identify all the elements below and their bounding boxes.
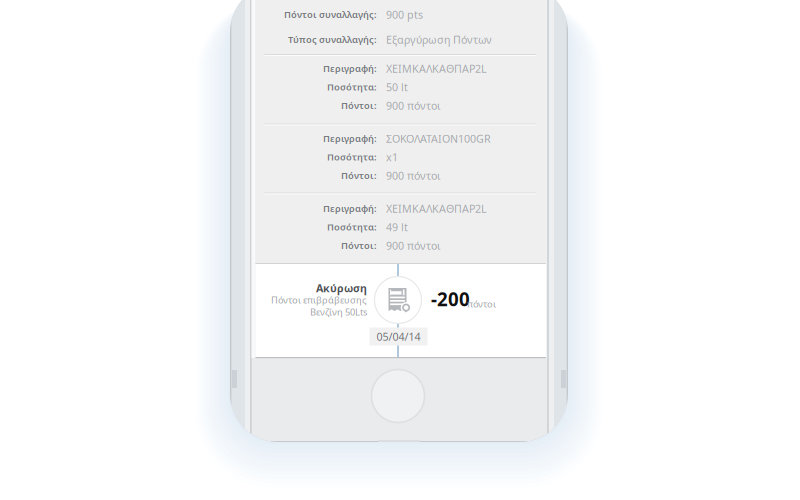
staticText: Πόντοι επιβράβευσης xyxy=(271,294,367,306)
staticText: 49 lt xyxy=(386,220,408,234)
staticText: 50 lt xyxy=(386,80,408,94)
staticText: Ποσότητα: xyxy=(327,151,377,163)
staticText: πόντοι xyxy=(467,298,496,310)
staticText: Τύπος συναλλαγής: xyxy=(288,33,377,46)
staticText: Περιγραφή: xyxy=(323,132,377,145)
staticText: 900 πόντοι xyxy=(386,168,441,183)
staticText: ΧΕΙΜΚΑΛΚΑΘΠΑΡ2L xyxy=(386,201,487,216)
staticText: Ακύρωση xyxy=(316,281,367,295)
staticText: 900 πόντοι xyxy=(386,238,441,253)
staticText: ΧΕΙΜΚΑΛΚΑΘΠΑΡ2L xyxy=(386,61,487,76)
staticText: Περιγραφή: xyxy=(323,62,377,75)
staticText: Πόντοι: xyxy=(341,169,377,182)
staticText: Βενζίνη 50Lts xyxy=(310,306,367,318)
staticText: 05/04/14 xyxy=(376,329,420,344)
staticText: -200 xyxy=(431,287,470,311)
staticText: 900 pts xyxy=(386,7,423,22)
staticText: Πόντοι συναλλαγής: xyxy=(284,8,377,21)
staticText: Πόντοι: xyxy=(341,239,377,252)
staticText: Ποσότητα: xyxy=(327,81,377,93)
button[interactable]: 05/04/14 xyxy=(369,327,427,345)
staticText: ΣΟΚΟΛΑΤΑΙΟΝ100GR xyxy=(386,131,491,146)
staticText: Εξαργύρωση Πόντων xyxy=(386,32,492,47)
button[interactable]: Ακύρωση xyxy=(255,264,546,357)
button[interactable]: Home xyxy=(371,369,424,422)
staticText: Πόντοι: xyxy=(341,99,377,112)
staticText: Ποσότητα: xyxy=(327,221,377,233)
staticText: x1 xyxy=(386,150,398,164)
staticText: Περιγραφή: xyxy=(323,202,377,215)
staticText: 900 πόντοι xyxy=(386,98,441,113)
